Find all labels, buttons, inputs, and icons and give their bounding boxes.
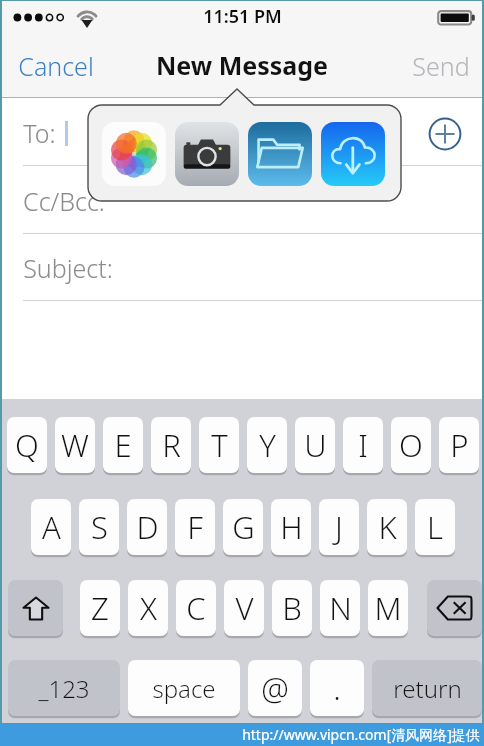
button[interactable]: Files xyxy=(248,122,312,186)
button[interactable]: _123 xyxy=(8,660,120,716)
button[interactable]: X xyxy=(128,580,168,636)
staticText: Z xyxy=(91,587,109,629)
staticText: N xyxy=(329,587,352,629)
staticText: V xyxy=(235,587,254,629)
staticText: Cancel xyxy=(18,49,94,83)
staticText: F xyxy=(187,506,203,548)
staticText: Y xyxy=(259,424,276,466)
staticText: space xyxy=(152,672,216,705)
button[interactable]: W xyxy=(55,417,95,473)
button[interactable]: B xyxy=(272,580,312,636)
button[interactable]: M xyxy=(368,580,408,636)
button[interactable]: Take Photo xyxy=(175,122,239,186)
button[interactable]: return xyxy=(372,660,482,716)
staticText: U xyxy=(304,424,327,466)
button[interactable]: Add recipient xyxy=(427,116,463,152)
button[interactable]: H xyxy=(271,499,311,555)
staticText: New Message xyxy=(156,48,328,82)
button[interactable]: G xyxy=(223,499,263,555)
button[interactable]: Send xyxy=(396,37,482,95)
staticText: X xyxy=(140,587,157,629)
staticText: Q xyxy=(15,424,39,466)
staticText: O xyxy=(399,424,423,466)
staticText: B xyxy=(282,587,302,629)
button[interactable]: J xyxy=(319,499,359,555)
staticText: J xyxy=(335,506,343,548)
button[interactable]: Cancel xyxy=(2,37,110,95)
button[interactable]: R xyxy=(151,417,191,473)
button[interactable]: iCloud Drive xyxy=(321,122,385,186)
staticText: P xyxy=(450,424,469,466)
button[interactable]: O xyxy=(391,417,431,473)
staticText: http://www.vipcn.com[清风网络]提供 xyxy=(242,725,480,744)
button[interactable]: E xyxy=(103,417,143,473)
staticText: C xyxy=(186,587,206,629)
button[interactable]: D xyxy=(127,499,167,555)
staticText: E xyxy=(114,424,132,466)
button[interactable]: Y xyxy=(247,417,287,473)
staticText: L xyxy=(427,506,443,548)
button[interactable]: Z xyxy=(80,580,120,636)
button[interactable]: S xyxy=(79,499,119,555)
staticText: Send xyxy=(412,49,470,83)
button[interactable]: F xyxy=(175,499,215,555)
staticText: I xyxy=(358,424,368,466)
staticText: . xyxy=(333,667,341,709)
staticText: R xyxy=(162,424,181,466)
staticText: To: xyxy=(23,116,56,150)
staticText: _123 xyxy=(38,672,90,705)
button[interactable]: P xyxy=(439,417,479,473)
button[interactable]: C xyxy=(176,580,216,636)
staticText: W xyxy=(61,424,89,466)
button[interactable]: Backspace xyxy=(427,580,482,636)
staticText: T xyxy=(211,424,228,466)
button[interactable]: . xyxy=(310,660,364,716)
staticText: Cc/Bcc: xyxy=(23,184,105,218)
button[interactable]: @ xyxy=(248,660,302,716)
staticText: S xyxy=(91,506,108,548)
staticText: H xyxy=(280,506,303,548)
staticText: M xyxy=(374,587,402,629)
button[interactable]: Shift xyxy=(8,580,63,636)
staticText: D xyxy=(136,506,159,548)
button[interactable]: I xyxy=(343,417,383,473)
button[interactable]: L xyxy=(415,499,455,555)
button[interactable]: V xyxy=(224,580,264,636)
staticText: Subject: xyxy=(23,251,113,285)
staticText: return xyxy=(393,672,462,705)
staticText: A xyxy=(42,506,61,548)
staticText: 11:51 PM xyxy=(203,4,282,29)
staticText: G xyxy=(232,506,255,548)
button[interactable]: space xyxy=(128,660,240,716)
button[interactable]: K xyxy=(367,499,407,555)
button[interactable]: N xyxy=(320,580,360,636)
button[interactable]: Q xyxy=(7,417,47,473)
staticText: @ xyxy=(261,667,289,709)
button[interactable]: A xyxy=(31,499,71,555)
button[interactable]: Photo Library xyxy=(102,122,166,186)
button[interactable]: U xyxy=(295,417,335,473)
button[interactable]: T xyxy=(199,417,239,473)
staticText: K xyxy=(378,506,397,548)
